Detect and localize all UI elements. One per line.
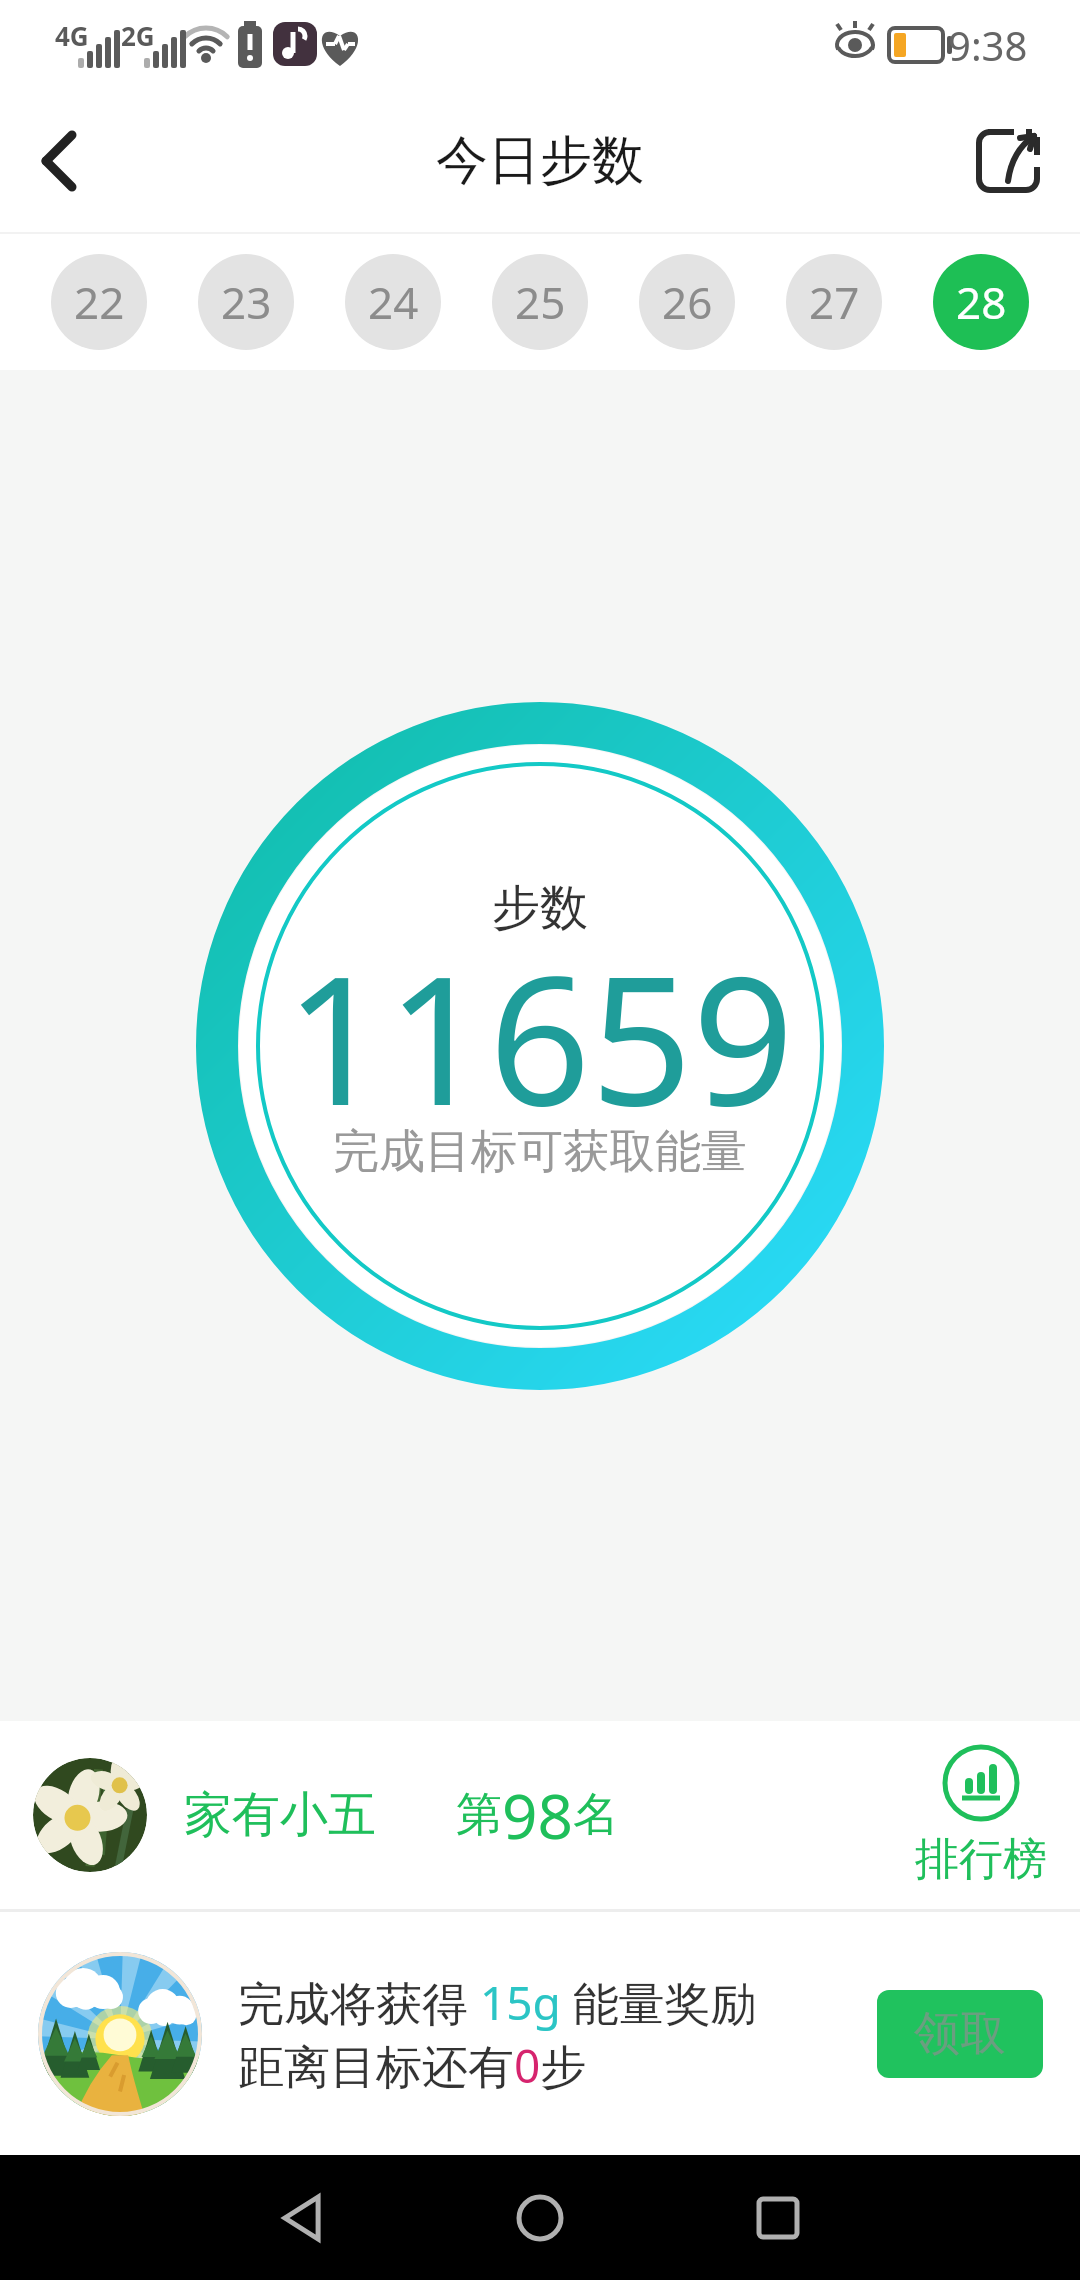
button[interactable]: 领取 bbox=[877, 1990, 1043, 2078]
button[interactable]: 26 bbox=[639, 254, 735, 350]
button[interactable] bbox=[222, 2155, 382, 2280]
button[interactable]: 24 bbox=[345, 254, 441, 350]
staticText: 25 bbox=[515, 272, 566, 332]
button[interactable]: 22 bbox=[51, 254, 147, 350]
button[interactable]: 28 bbox=[933, 254, 1029, 350]
staticText: 24 bbox=[368, 272, 419, 332]
staticText: 步数 bbox=[492, 878, 588, 938]
button[interactable] bbox=[698, 2155, 858, 2280]
button[interactable]: 27 bbox=[786, 254, 882, 350]
staticText: 距离目标还有0步 bbox=[238, 2034, 587, 2097]
staticText: 领取 bbox=[914, 2005, 1006, 2063]
staticText: 22 bbox=[74, 272, 125, 332]
staticText: 排行榜 bbox=[915, 1832, 1047, 1887]
staticText: 98 bbox=[502, 1773, 573, 1857]
button[interactable] bbox=[460, 2155, 620, 2280]
staticText: 26 bbox=[662, 272, 713, 332]
staticText: 28 bbox=[956, 272, 1007, 332]
staticText: 27 bbox=[809, 272, 860, 332]
button[interactable]: 25 bbox=[492, 254, 588, 350]
staticText: 家有小五 bbox=[184, 1785, 376, 1845]
button[interactable]: 23 bbox=[198, 254, 294, 350]
button[interactable]: 排行榜 bbox=[915, 1744, 1047, 1887]
staticText: 第 bbox=[456, 1786, 502, 1844]
staticText: 2G bbox=[121, 18, 155, 53]
staticText: 今日步数 bbox=[436, 128, 644, 194]
staticText: 9:38 bbox=[948, 18, 1028, 72]
staticText: 完成目标可获取能量 bbox=[333, 1123, 747, 1181]
button[interactable]: 家有小五 bbox=[0, 1721, 1080, 1909]
button[interactable] bbox=[30, 126, 100, 196]
staticText: 4G bbox=[55, 18, 89, 53]
button[interactable] bbox=[976, 129, 1040, 193]
staticText: 11659 bbox=[285, 915, 795, 1157]
staticText: 名 bbox=[573, 1786, 619, 1844]
staticText: 23 bbox=[221, 272, 272, 332]
staticText: 完成将获得 15g 能量奖励 bbox=[238, 1971, 757, 2034]
